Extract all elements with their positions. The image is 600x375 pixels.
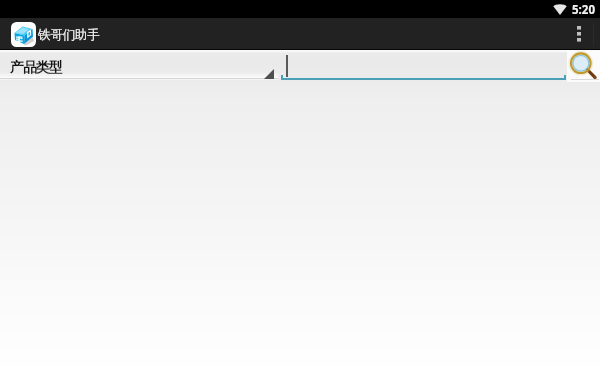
staticText: 5:20 <box>572 2 595 18</box>
button[interactable] <box>281 51 566 80</box>
staticText: 产品类型 <box>10 59 62 77</box>
button[interactable]: Search <box>567 51 600 82</box>
button[interactable]: More options <box>566 18 592 50</box>
button[interactable]: 产品类型 <box>0 51 278 79</box>
staticText: 铁哥们助手 <box>38 27 100 43</box>
